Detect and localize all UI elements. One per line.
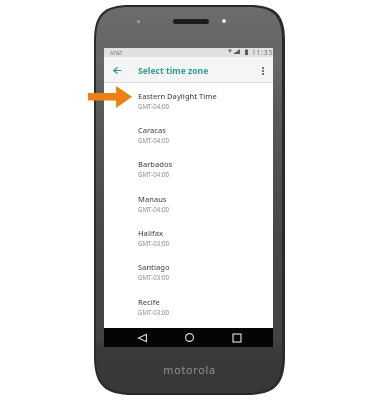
staticText: Manaus <box>138 194 167 204</box>
button[interactable]: Santiago <box>104 254 273 288</box>
staticText: AT&T <box>110 49 123 56</box>
button[interactable]: Caracas <box>104 117 273 151</box>
staticText: Caracas <box>138 125 166 135</box>
staticText: GMT-04:00 <box>138 170 170 178</box>
button[interactable]: Halifax <box>104 220 273 254</box>
staticText: Eastern Daylight Time <box>138 91 217 101</box>
staticText: GMT-04:00 <box>138 205 170 213</box>
button[interactable]: Navigate up <box>109 62 125 78</box>
button[interactable]: Eastern Daylight Time <box>104 83 273 117</box>
staticText: motorola <box>94 362 285 377</box>
staticText: GMT-04:00 <box>138 102 170 110</box>
button[interactable]: Recent apps <box>223 328 251 347</box>
staticText: Santiago <box>138 262 170 272</box>
staticText: Barbados <box>138 159 173 169</box>
staticText: GMT-03:00 <box>138 273 170 281</box>
button[interactable]: Home <box>175 328 203 347</box>
staticText: Halifax <box>138 228 163 238</box>
staticText: Select time zone <box>138 65 209 77</box>
staticText: 11:35 <box>252 48 274 57</box>
button[interactable]: More options <box>255 63 271 79</box>
button[interactable]: Manaus <box>104 186 273 220</box>
staticText: GMT-04:00 <box>138 136 170 144</box>
button[interactable]: Recife <box>104 289 273 323</box>
staticText: Recife <box>138 297 160 307</box>
staticText: GMT-03:00 <box>138 308 170 316</box>
button[interactable]: Back <box>128 328 156 347</box>
button[interactable]: Barbados <box>104 151 273 185</box>
staticText: GMT-03:00 <box>138 239 170 247</box>
